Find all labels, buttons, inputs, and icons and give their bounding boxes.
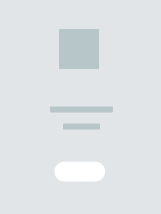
button[interactable]: Continue [54, 162, 105, 181]
